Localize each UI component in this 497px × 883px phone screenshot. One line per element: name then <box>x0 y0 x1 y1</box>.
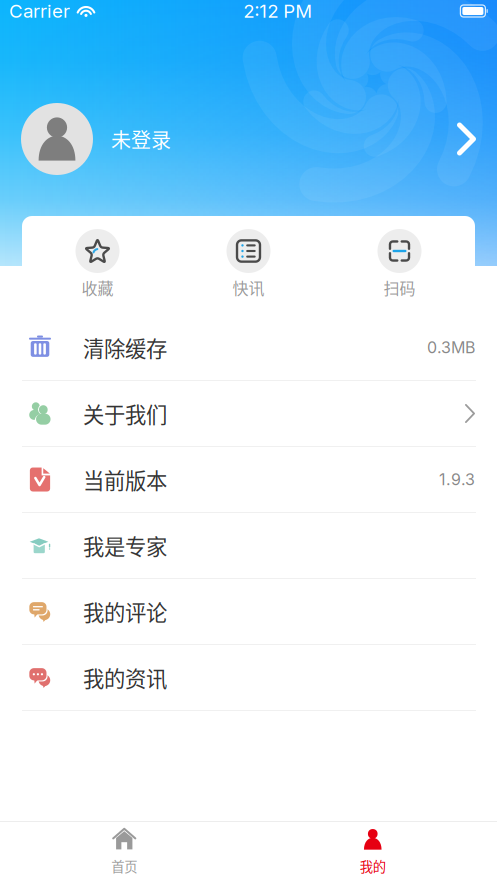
button[interactable]: 快讯 <box>173 229 324 296</box>
staticText: 收藏 <box>81 276 113 299</box>
button[interactable]: 扫码 <box>324 229 475 296</box>
button[interactable]: 我的评论 <box>0 579 497 645</box>
staticText: 首页 <box>111 856 137 876</box>
staticText: 关于我们 <box>83 398 167 429</box>
staticText: 扫码 <box>383 276 415 299</box>
staticText: 快讯 <box>232 276 264 299</box>
button[interactable]: 我的资讯 <box>0 645 497 711</box>
staticText: 清除缓存 <box>83 332 167 363</box>
staticText: 1.9.3 <box>439 470 475 489</box>
button[interactable]: 未登录 <box>0 103 497 175</box>
button[interactable]: 收藏 <box>22 229 173 296</box>
button[interactable]: 首页 <box>0 820 248 883</box>
staticText: 我的资讯 <box>83 662 167 693</box>
staticText: Carrier <box>9 0 70 22</box>
staticText: 我的 <box>360 856 386 876</box>
staticText: 2:12 PM <box>243 0 312 22</box>
button[interactable]: 我的 <box>248 820 497 883</box>
staticText: 0.3MB <box>427 338 475 357</box>
staticText: 当前版本 <box>83 464 167 495</box>
button[interactable]: 当前版本 <box>0 447 497 513</box>
button[interactable]: 我是专家 <box>0 513 497 579</box>
staticText: 我的评论 <box>83 596 167 627</box>
button[interactable]: 清除缓存 <box>0 315 497 381</box>
button[interactable]: 关于我们 <box>0 381 497 447</box>
staticText: 我是专家 <box>83 530 167 561</box>
staticText: 未登录 <box>111 124 171 153</box>
